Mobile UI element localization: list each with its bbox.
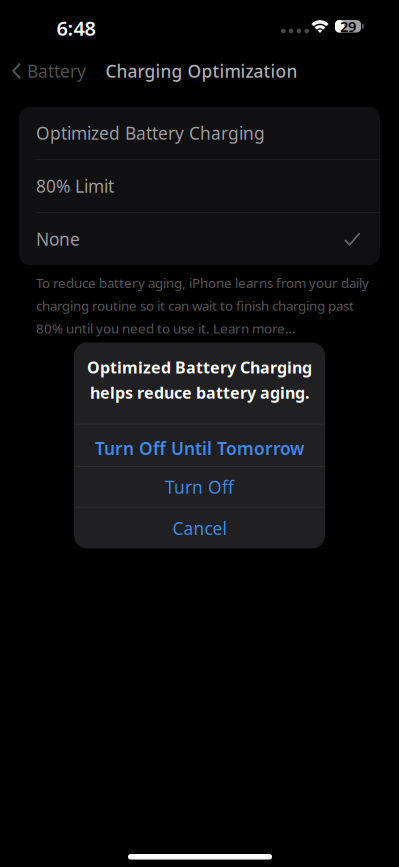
staticText: None <box>36 227 80 250</box>
staticText: 29 <box>340 16 356 36</box>
staticText: To reduce battery aging, iPhone learns f… <box>36 274 369 292</box>
button[interactable]: 80% Limit <box>19 160 380 212</box>
staticText: Optimized Battery Charging <box>87 357 312 378</box>
button[interactable]: Turn Off <box>74 467 325 507</box>
staticText: Battery <box>27 59 86 82</box>
button[interactable]: Turn Off Until Tomorrow <box>74 428 325 469</box>
staticText: 80% until you need to use it. Learn more… <box>36 319 296 337</box>
staticText: Charging Optimization <box>105 59 297 82</box>
button[interactable]: Cancel <box>74 508 325 549</box>
staticText: Optimized Battery Charging <box>36 121 265 144</box>
button[interactable]: Optimized Battery Charging <box>19 107 380 159</box>
staticText: Turn Off Until Tomorrow <box>95 437 304 460</box>
staticText: charging routine so it can wait to finis… <box>36 297 354 314</box>
button[interactable]: Battery <box>0 50 100 92</box>
button[interactable]: None <box>19 213 380 265</box>
staticText: helps reduce battery aging. <box>90 382 309 403</box>
staticText: Cancel <box>172 517 226 540</box>
staticText: Turn Off <box>165 475 234 498</box>
staticText: 80% Limit <box>36 174 114 197</box>
staticText: 6:48 <box>56 15 95 41</box>
